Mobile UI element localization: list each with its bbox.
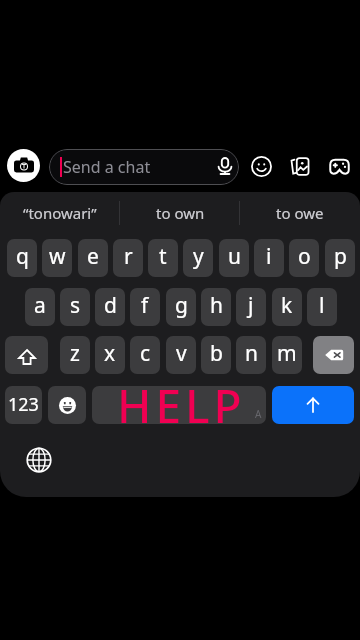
staticText: o [298, 242, 311, 271]
staticText: b [210, 339, 223, 368]
button[interactable]: a [25, 288, 55, 326]
staticText: q [16, 242, 29, 271]
button[interactable]: Shift [5, 336, 48, 374]
button[interactable]: k [272, 288, 302, 326]
button[interactable]: Stickers [250, 155, 273, 178]
staticText: k [281, 291, 293, 320]
button[interactable]: Send [272, 386, 354, 424]
button[interactable]: l [307, 288, 337, 326]
staticText: p [334, 242, 347, 271]
button[interactable]: d [95, 288, 125, 326]
button[interactable]: Voice message [214, 155, 236, 177]
staticText: i [266, 242, 272, 271]
staticText: c [140, 339, 151, 368]
button[interactable]: b [201, 336, 231, 374]
button[interactable]: s [60, 288, 90, 326]
staticText: to owe [276, 203, 324, 223]
staticText: “tonowari” [23, 203, 97, 223]
staticText: x [104, 339, 116, 368]
staticText: j [248, 291, 254, 320]
staticText: m [277, 339, 297, 368]
button[interactable]: Change keyboard language [27, 448, 51, 472]
button[interactable]: w [42, 239, 72, 277]
staticText: w [49, 242, 66, 271]
staticText: s [70, 291, 81, 320]
button[interactable]: j [236, 288, 266, 326]
staticText: t [159, 242, 167, 271]
button[interactable]: q [7, 239, 37, 277]
staticText: A [255, 407, 262, 421]
button[interactable]: p [325, 239, 355, 277]
button[interactable]: Space [92, 386, 266, 424]
staticText: a [34, 291, 46, 320]
button[interactable]: Send a chat [49, 149, 239, 185]
staticText: v [176, 339, 187, 368]
button[interactable]: Backspace [313, 336, 354, 374]
button[interactable]: i [254, 239, 284, 277]
staticText: Send a chat [63, 156, 151, 178]
staticText: h [210, 291, 223, 320]
button[interactable]: f [130, 288, 160, 326]
button[interactable]: to owe [240, 192, 360, 236]
button[interactable]: x [95, 336, 125, 374]
button[interactable]: 123 [5, 386, 42, 424]
staticText: z [70, 339, 80, 368]
staticText: g [175, 291, 188, 320]
button[interactable]: z [60, 336, 90, 374]
button[interactable]: Photos [288, 155, 311, 178]
button[interactable]: u [219, 239, 249, 277]
staticText: d [104, 291, 117, 320]
staticText: r [124, 242, 133, 271]
button[interactable]: to own [120, 192, 240, 236]
button[interactable]: o [289, 239, 319, 277]
button[interactable]: e [78, 239, 108, 277]
button[interactable]: r [113, 239, 143, 277]
staticText: n [245, 339, 258, 368]
button[interactable]: n [236, 336, 266, 374]
button[interactable]: v [166, 336, 196, 374]
staticText: u [228, 242, 241, 271]
staticText: HELP [117, 374, 246, 436]
button[interactable]: g [166, 288, 196, 326]
staticText: to own [156, 203, 205, 223]
staticText: 123 [8, 392, 39, 417]
button[interactable]: t [148, 239, 178, 277]
button[interactable]: Emoji [48, 386, 86, 424]
button[interactable]: c [130, 336, 160, 374]
button[interactable]: y [183, 239, 213, 277]
staticText: f [141, 291, 149, 320]
button[interactable]: “tonowari” [0, 192, 120, 236]
staticText: l [319, 291, 325, 320]
button[interactable]: Games [328, 155, 351, 178]
button[interactable]: h [201, 288, 231, 326]
button[interactable]: Open camera [7, 149, 40, 182]
staticText: y [193, 242, 204, 271]
staticText: e [87, 242, 99, 271]
button[interactable]: m [272, 336, 302, 374]
